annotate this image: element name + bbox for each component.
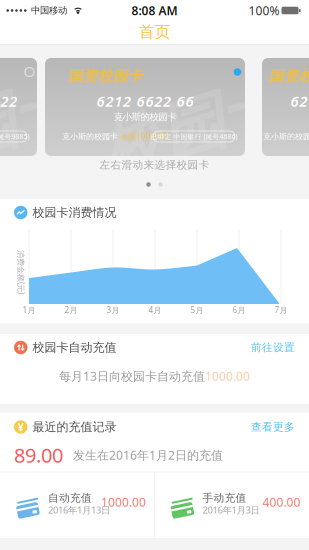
staticText: 6月 bbox=[232, 305, 245, 315]
staticText: 6212 6622 6222 bbox=[0, 91, 17, 111]
staticText: 首页 bbox=[138, 22, 170, 42]
staticText: 查看更多 bbox=[251, 420, 295, 433]
staticText: 3月 bbox=[106, 305, 119, 315]
staticText: 8:08 AM bbox=[131, 2, 177, 18]
staticText: 校园卡 bbox=[298, 89, 309, 167]
staticText: 手动充值 bbox=[202, 491, 246, 504]
staticText: 400.00 bbox=[262, 494, 300, 510]
staticText: 校园卡自动充值 bbox=[32, 340, 116, 355]
staticText: 校园卡消费情况 bbox=[32, 205, 116, 220]
staticText: 4月 bbox=[148, 305, 161, 315]
staticText: 5月 bbox=[190, 305, 203, 315]
staticText: 克小斯的校园卡 bbox=[263, 132, 309, 141]
button[interactable]: 前往设置 bbox=[251, 341, 295, 354]
staticText: 89.00 bbox=[14, 442, 63, 468]
staticText: 每月13日向校园卡自动充值 bbox=[59, 368, 205, 384]
staticText: 国资校园卡 bbox=[68, 67, 143, 85]
button[interactable]: 自动充值 bbox=[0, 474, 154, 536]
staticText: 1000.00 bbox=[205, 368, 250, 384]
staticText: 中国移动 bbox=[31, 5, 67, 16]
staticText: 国资校园卡 bbox=[269, 67, 309, 85]
button[interactable]: 手动充值 bbox=[154, 474, 309, 536]
staticText: 6212 6622 66 bbox=[97, 91, 193, 111]
staticText: 已绑定 中国银行 (尾号4686) bbox=[150, 132, 237, 141]
staticText: 发生在2016年1月2日的充值 bbox=[73, 447, 223, 463]
button[interactable]: 查看更多 bbox=[251, 420, 295, 433]
staticText: 2016年1月13日 bbox=[48, 504, 110, 516]
staticText: 余额1000.00 bbox=[120, 131, 168, 142]
staticText: 7月 bbox=[274, 305, 287, 315]
staticText: 已绑定 工商银行 (尾号9885) bbox=[0, 132, 29, 141]
staticText: 1月 bbox=[22, 305, 35, 315]
staticText: 2016年1月3日 bbox=[202, 504, 259, 516]
staticText: 克小斯的校园卡 bbox=[113, 111, 176, 123]
staticText: 左右滑动来选择校园卡 bbox=[99, 158, 209, 171]
staticText: 消费金额(元) bbox=[0, 267, 43, 277]
button[interactable]: 校园卡 bbox=[45, 58, 245, 156]
staticText: 100% bbox=[248, 2, 279, 18]
staticText: 前往设置 bbox=[251, 341, 295, 354]
staticText: 自动充值 bbox=[48, 491, 92, 504]
staticText: 最近的充值记录 bbox=[32, 420, 116, 434]
staticText: 2月 bbox=[64, 305, 77, 315]
staticText: 校园卡 bbox=[97, 89, 289, 167]
staticText: 6212 6622 66 bbox=[291, 91, 309, 111]
staticText: ¥ bbox=[18, 420, 24, 434]
staticText: 1000.00 bbox=[101, 494, 146, 510]
staticText: 校园卡 bbox=[0, 89, 81, 167]
staticText: 克小斯的校园卡 bbox=[62, 132, 118, 141]
